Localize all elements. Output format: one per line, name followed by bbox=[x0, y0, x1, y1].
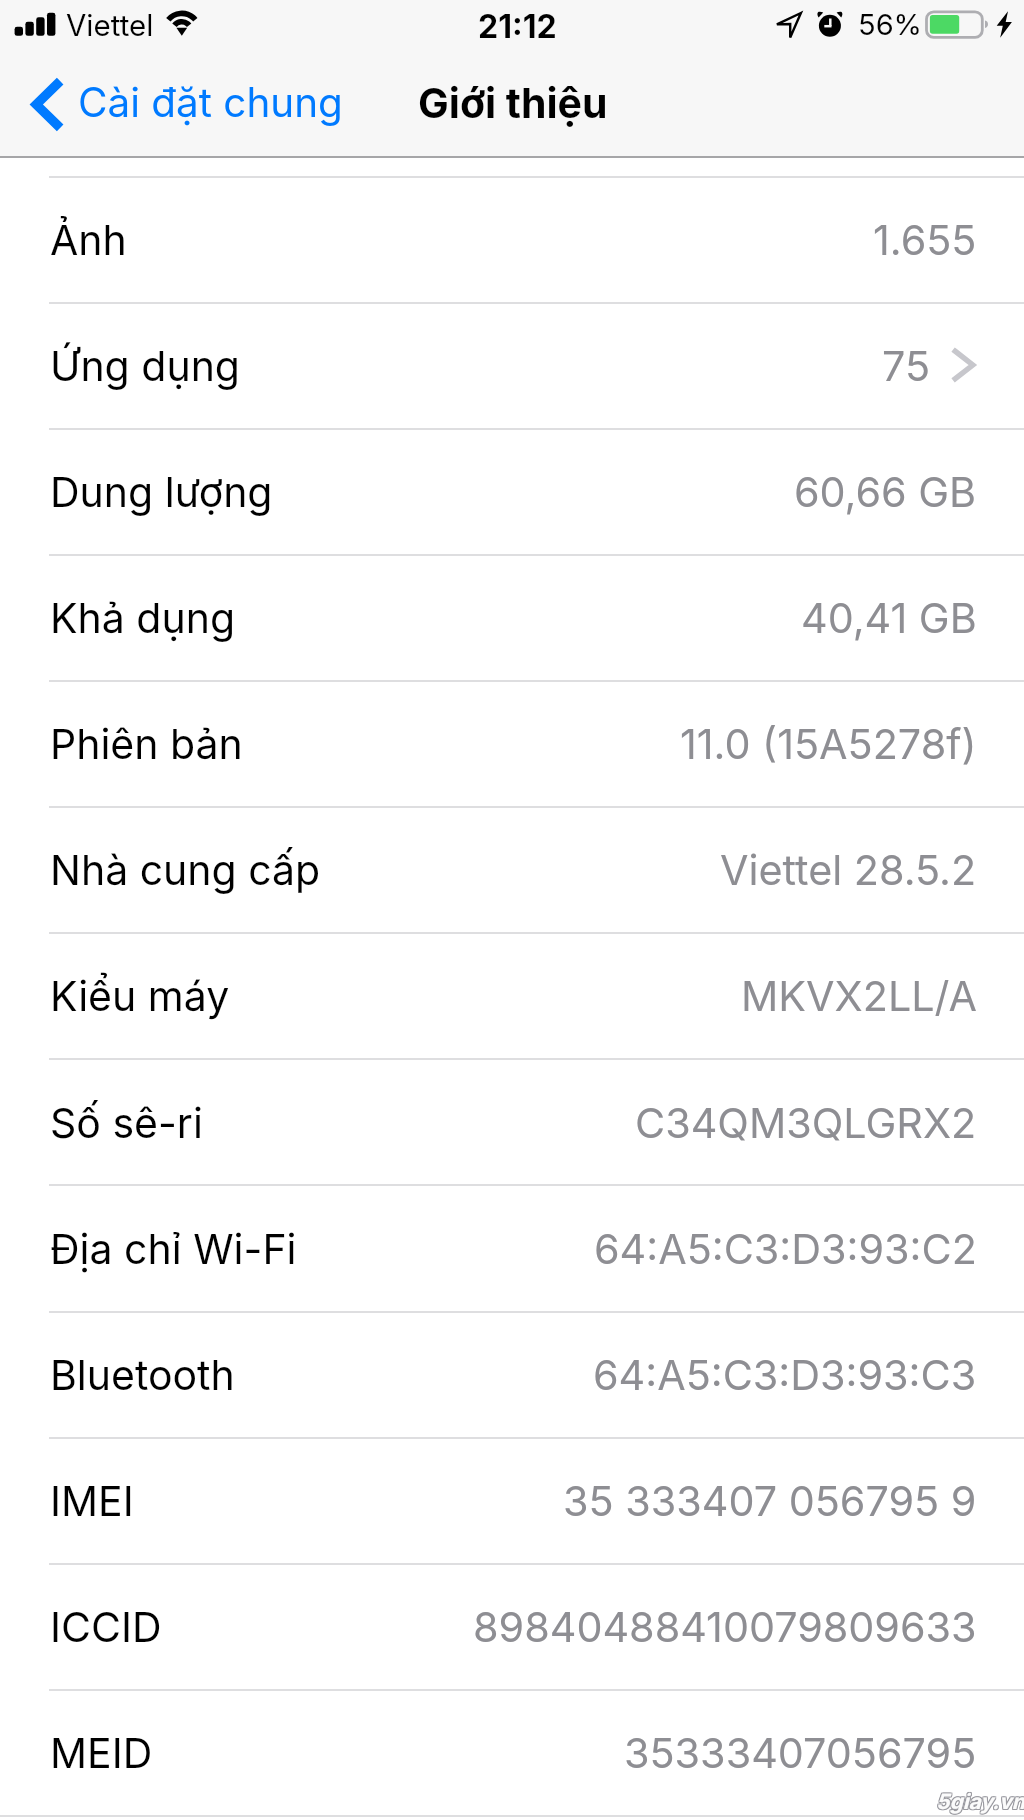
staticText: 35333407056795 bbox=[624, 1728, 977, 1778]
staticText: Bluetooth bbox=[50, 1350, 235, 1400]
button[interactable]: Phiên bản bbox=[0, 681, 1024, 806]
button[interactable]: Nhà cung cấp bbox=[0, 807, 1024, 932]
staticText: Dung lượng bbox=[50, 467, 273, 517]
staticText: Số sê-ri bbox=[50, 1098, 203, 1148]
button[interactable]: Khả dụng bbox=[0, 555, 1024, 680]
staticText: IMEI bbox=[50, 1476, 134, 1526]
staticText: 5giay.vn bbox=[935, 1788, 1024, 1813]
staticText: 5giay.vn bbox=[937, 1788, 1024, 1813]
staticText: MEID bbox=[50, 1728, 153, 1778]
staticText: Viettel 28.5.2 bbox=[720, 845, 977, 895]
staticText: C34QM3QLGRX2 bbox=[635, 1098, 977, 1148]
button[interactable]: Ảnh bbox=[0, 177, 1024, 302]
staticText: MKVX2LL/A bbox=[741, 971, 977, 1021]
staticText: 56% bbox=[858, 7, 923, 42]
button[interactable]: Back to Cài đặt chung bbox=[14, 62, 357, 148]
staticText: Cài đặt chung bbox=[78, 78, 343, 127]
staticText: Phiên bản bbox=[50, 719, 243, 769]
staticText: 5giay.vn bbox=[935, 1790, 1024, 1815]
button[interactable]: Ứng dụng bbox=[0, 303, 1024, 428]
staticText: Ảnh bbox=[50, 215, 127, 265]
staticText: 5giay.vn bbox=[935, 1789, 1024, 1814]
staticText: 5giay.vn bbox=[937, 1789, 1024, 1814]
staticText: 1.655 bbox=[873, 215, 977, 265]
button[interactable]: ICCID bbox=[0, 1564, 1024, 1689]
staticText: 5giay.vn bbox=[937, 1790, 1024, 1815]
staticText: 60,66 GB bbox=[794, 467, 977, 517]
button[interactable]: IMEI bbox=[0, 1438, 1024, 1563]
staticText: Khả dụng bbox=[50, 593, 236, 643]
staticText: 64:A5:C3:D3:93:C2 bbox=[594, 1224, 977, 1274]
staticText: Giới thiệu bbox=[418, 78, 608, 128]
staticText: 64:A5:C3:D3:93:C3 bbox=[593, 1350, 977, 1400]
staticText: Viettel bbox=[66, 7, 154, 43]
staticText: 40,41 GB bbox=[801, 593, 977, 643]
staticText: 75 bbox=[882, 341, 931, 391]
button[interactable]: Dung lượng bbox=[0, 429, 1024, 554]
staticText: 5giay.vn bbox=[936, 1790, 1024, 1815]
staticText: ICCID bbox=[50, 1602, 162, 1652]
staticText: 21:12 bbox=[478, 7, 557, 46]
button[interactable]: Bluetooth bbox=[0, 1312, 1024, 1437]
staticText: Địa chỉ Wi-Fi bbox=[50, 1224, 297, 1274]
button[interactable]: Số sê-ri bbox=[0, 1060, 1024, 1185]
staticText: Nhà cung cấp bbox=[50, 845, 321, 895]
button[interactable]: Địa chỉ Wi-Fi bbox=[0, 1186, 1024, 1311]
other: More bbox=[951, 345, 977, 385]
staticText: 11.0 (15A5278f) bbox=[680, 719, 977, 769]
staticText: 5giay.vn bbox=[936, 1789, 1024, 1814]
staticText: 5giay.vn bbox=[936, 1788, 1024, 1813]
staticText: 89840488410079809633 bbox=[473, 1602, 977, 1652]
button[interactable]: MEID bbox=[0, 1690, 1024, 1815]
button[interactable]: Kiểu máy bbox=[0, 933, 1024, 1058]
staticText: Kiểu máy bbox=[50, 971, 230, 1021]
staticText: 35 333407 056795 9 bbox=[563, 1476, 977, 1526]
staticText: Ứng dụng bbox=[50, 341, 241, 391]
